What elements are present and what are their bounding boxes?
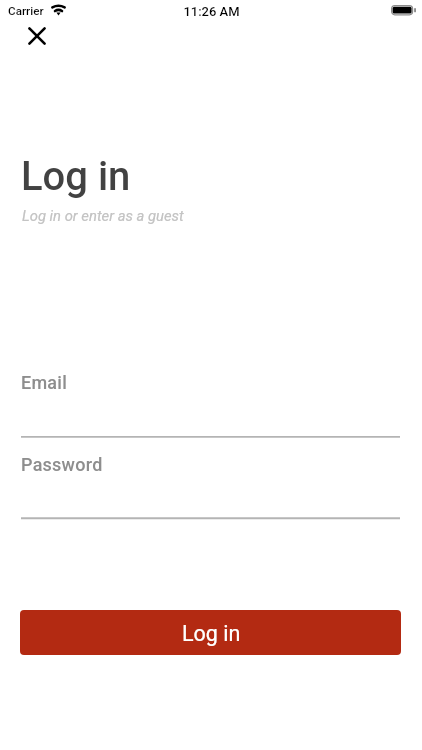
button[interactable]: Close xyxy=(12,12,60,60)
staticText: 11:26 AM xyxy=(183,4,240,19)
button[interactable]: Log in xyxy=(20,610,401,655)
button[interactable]: Email xyxy=(21,366,400,438)
staticText: Log in or enter as a guest xyxy=(22,207,184,224)
staticText: Log in xyxy=(21,153,131,200)
staticText: Log in xyxy=(182,621,241,646)
staticText: Email xyxy=(21,372,67,393)
button[interactable]: Password xyxy=(21,448,400,520)
staticText: Carrier xyxy=(8,4,44,18)
staticText: Password xyxy=(21,454,103,475)
